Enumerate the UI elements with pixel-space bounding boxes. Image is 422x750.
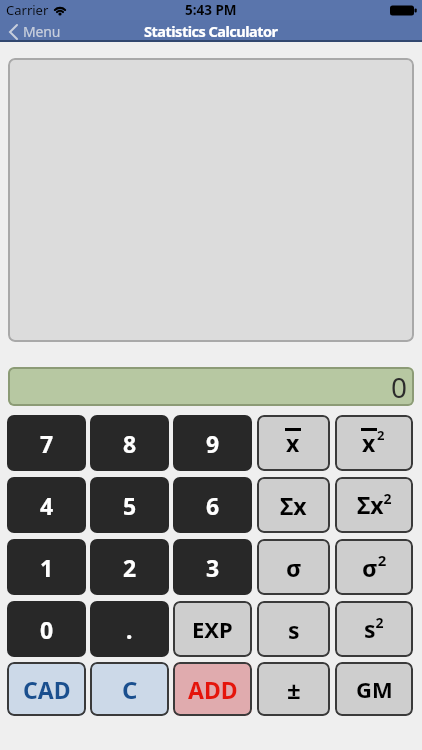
- button[interactable]: x: [257, 415, 330, 471]
- staticText: Menu: [23, 22, 61, 41]
- staticText: GM: [356, 674, 393, 704]
- button[interactable]: ADD: [173, 662, 252, 716]
- staticText: 4: [40, 490, 54, 521]
- button[interactable]: GM: [335, 662, 413, 716]
- staticText: 1: [40, 552, 54, 583]
- button[interactable]: C: [90, 662, 169, 716]
- button[interactable]: σ: [257, 539, 330, 595]
- button[interactable]: x: [335, 415, 413, 471]
- staticText: 0: [391, 368, 408, 406]
- staticText: 7: [40, 428, 54, 459]
- button[interactable]: 5: [90, 477, 169, 533]
- staticText: Σx: [280, 490, 307, 521]
- staticText: 6: [206, 490, 220, 521]
- button[interactable]: .: [90, 601, 169, 657]
- staticText: 5:43 PM: [185, 1, 237, 19]
- button[interactable]: s2: [335, 601, 413, 657]
- button[interactable]: s: [257, 601, 330, 657]
- staticText: σ2: [362, 550, 387, 584]
- staticText: ADD: [188, 674, 238, 705]
- staticText: CAD: [23, 674, 71, 705]
- button[interactable]: 8: [90, 415, 169, 471]
- staticText: 3: [206, 552, 220, 583]
- button[interactable]: EXP: [173, 601, 252, 657]
- button[interactable]: ±: [257, 662, 330, 716]
- button[interactable]: Σx: [257, 477, 330, 533]
- staticText: ±: [287, 673, 301, 706]
- button[interactable]: 7: [7, 415, 86, 471]
- staticText: 2: [377, 426, 385, 444]
- button[interactable]: 9: [173, 415, 252, 471]
- button[interactable]: 0: [7, 601, 86, 657]
- button[interactable]: 3: [173, 539, 252, 595]
- staticText: 2: [123, 552, 137, 583]
- staticText: x: [362, 427, 376, 458]
- button[interactable]: 4: [7, 477, 86, 533]
- staticText: .: [126, 614, 133, 645]
- button[interactable]: 6: [173, 477, 252, 533]
- staticText: s2: [364, 613, 384, 645]
- staticText: EXP: [192, 614, 233, 644]
- button[interactable]: Σx2: [335, 477, 413, 533]
- button[interactable]: σ2: [335, 539, 413, 595]
- staticText: Carrier: [6, 1, 49, 19]
- staticText: Σx2: [357, 489, 392, 521]
- staticText: Statistics Calculator: [144, 21, 278, 41]
- staticText: σ: [286, 551, 302, 584]
- staticText: 8: [123, 428, 137, 459]
- staticText: 5: [123, 490, 137, 521]
- button[interactable]: 2: [90, 539, 169, 595]
- button[interactable]: Menu: [8, 22, 61, 41]
- staticText: s: [288, 614, 300, 645]
- staticText: x: [286, 427, 300, 458]
- staticText: C: [122, 673, 138, 706]
- staticText: 0: [40, 614, 54, 645]
- button[interactable]: 1: [7, 539, 86, 595]
- staticText: 9: [206, 428, 220, 459]
- button[interactable]: CAD: [7, 662, 86, 716]
